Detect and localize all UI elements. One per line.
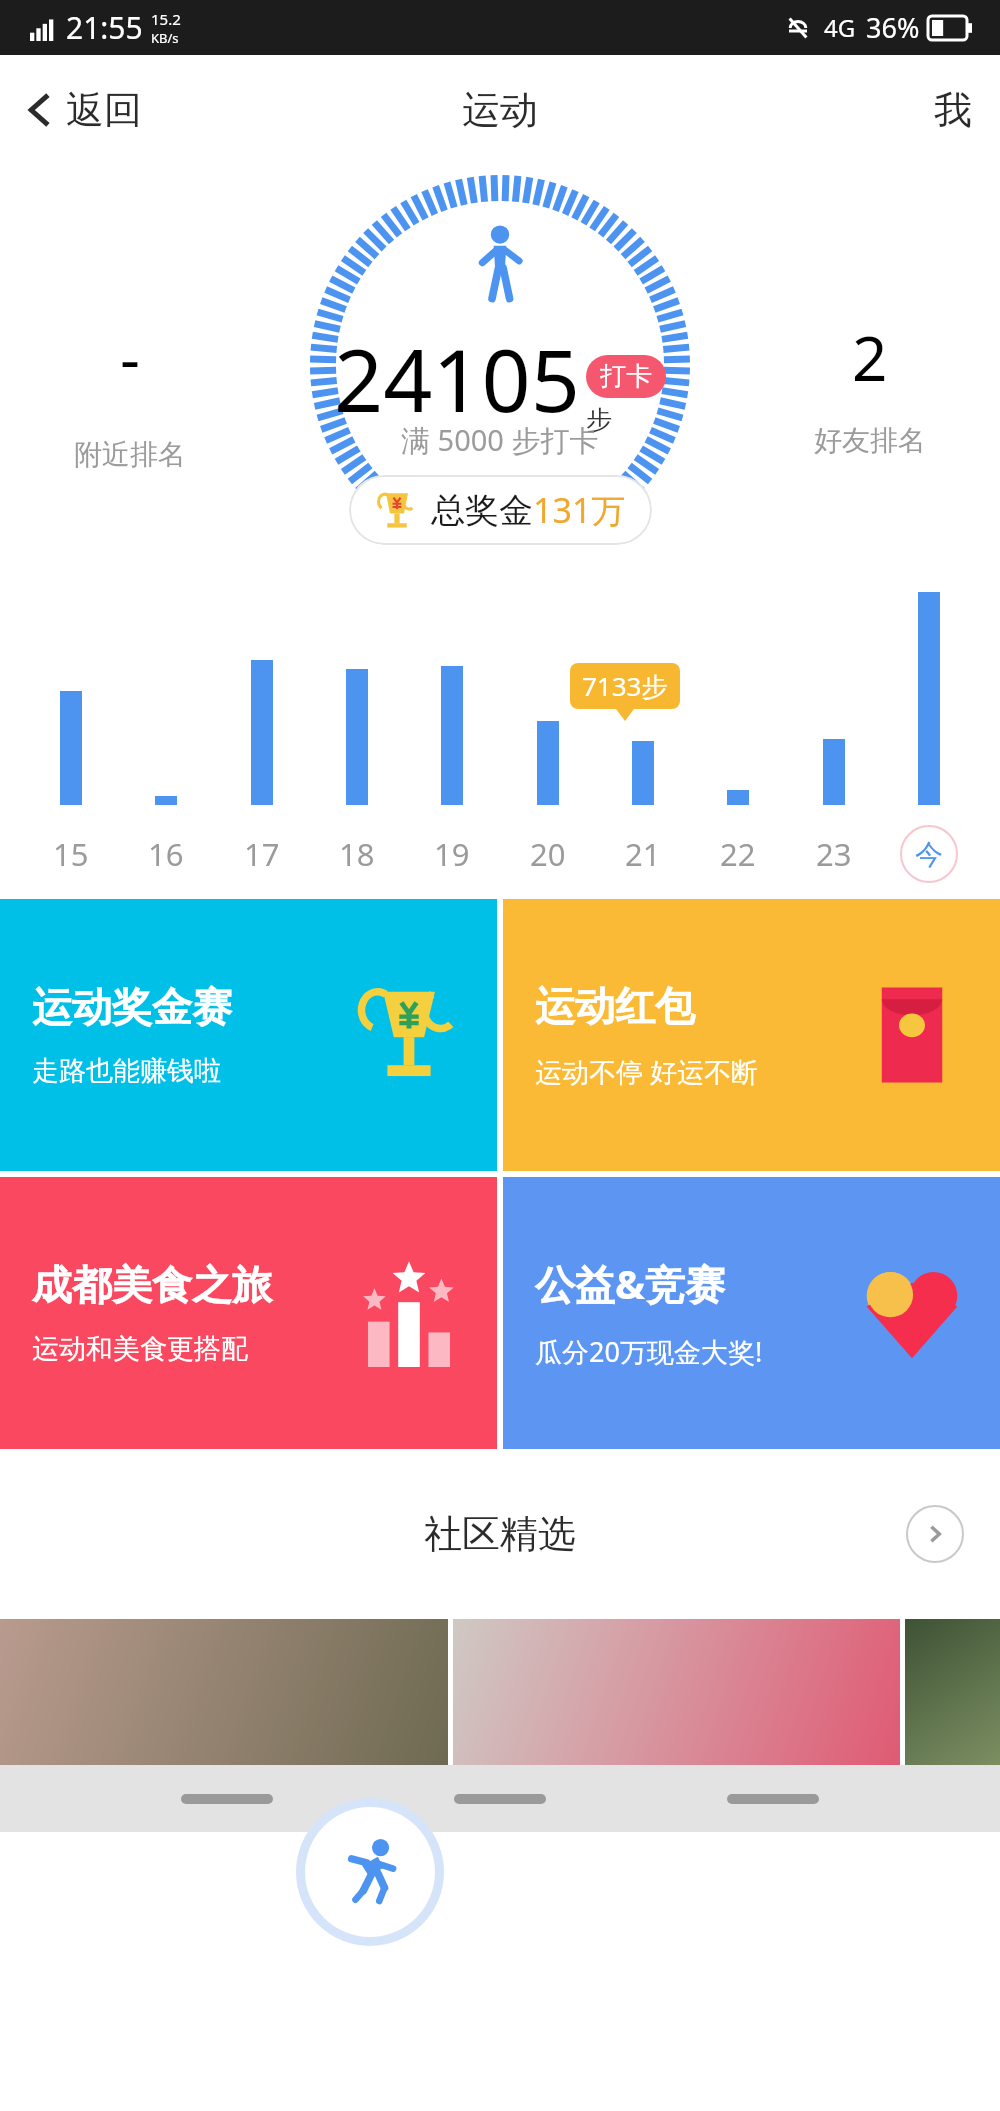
- staticText: 瓜分20万现金大奖!: [535, 1333, 763, 1370]
- button[interactable]: [905, 1619, 1000, 1765]
- staticText: 今: [915, 837, 943, 872]
- staticText: 21: [625, 833, 661, 875]
- staticText: 步: [586, 404, 612, 437]
- staticText: 4G: [824, 11, 856, 44]
- staticText: 17: [244, 833, 280, 875]
- staticText: 21:55: [66, 7, 143, 48]
- button[interactable]: 运动红包: [503, 899, 1000, 1171]
- button[interactable]: Nav: [727, 1794, 819, 1804]
- staticText: 公益&竞赛: [535, 1256, 725, 1311]
- staticText: 满 5000 步打卡: [401, 420, 599, 460]
- button[interactable]: 2: [780, 315, 960, 458]
- staticText: 附近排名: [74, 437, 186, 472]
- staticText: 返回: [66, 86, 142, 134]
- staticText: 运动红包: [535, 981, 695, 1031]
- button[interactable]: 公益&竞赛: [503, 1177, 1000, 1449]
- button[interactable]: Nav: [181, 1794, 273, 1804]
- staticText: 22: [720, 833, 756, 875]
- button[interactable]: More: [906, 1505, 964, 1563]
- staticText: 社区精选: [424, 1510, 576, 1558]
- button[interactable]: Start running: [296, 1798, 444, 1946]
- staticText: 好友排名: [814, 423, 926, 458]
- staticText: 19: [434, 833, 470, 875]
- staticText: 走路也能赚钱啦: [32, 1054, 221, 1088]
- button[interactable]: 运动奖金赛: [0, 899, 497, 1171]
- staticText: KB/s: [151, 29, 179, 47]
- staticText: 15.2: [151, 9, 181, 29]
- staticText: 24105: [334, 320, 580, 437]
- staticText: 2: [852, 315, 888, 399]
- staticText: 运动: [462, 86, 538, 134]
- button[interactable]: 今: [900, 825, 958, 883]
- button[interactable]: [0, 1619, 448, 1765]
- button[interactable]: 返回: [18, 86, 142, 134]
- staticText: 7133步: [582, 668, 668, 704]
- staticText: 23: [816, 833, 852, 875]
- button[interactable]: 我: [934, 86, 972, 134]
- staticText: 打卡: [600, 360, 652, 393]
- staticText: 131万: [533, 487, 626, 533]
- staticText: -: [120, 315, 140, 399]
- staticText: 20: [530, 833, 566, 875]
- staticText: 36%: [866, 9, 920, 46]
- button[interactable]: 成都美食之旅: [0, 1177, 497, 1449]
- staticText: 运动和美食更搭配: [32, 1332, 248, 1366]
- staticText: 总奖金: [431, 489, 533, 532]
- button[interactable]: Nav: [454, 1794, 546, 1804]
- staticText: 成都美食之旅: [32, 1260, 272, 1310]
- button[interactable]: 打卡: [586, 355, 666, 398]
- button[interactable]: [453, 1619, 900, 1765]
- staticText: 16: [148, 833, 184, 875]
- button[interactable]: 总奖金: [349, 475, 652, 545]
- staticText: 15: [53, 833, 89, 875]
- button[interactable]: -: [40, 315, 220, 472]
- staticText: 18: [339, 833, 375, 875]
- staticText: 运动不停 好运不断: [535, 1053, 759, 1090]
- staticText: 运动奖金赛: [32, 982, 232, 1032]
